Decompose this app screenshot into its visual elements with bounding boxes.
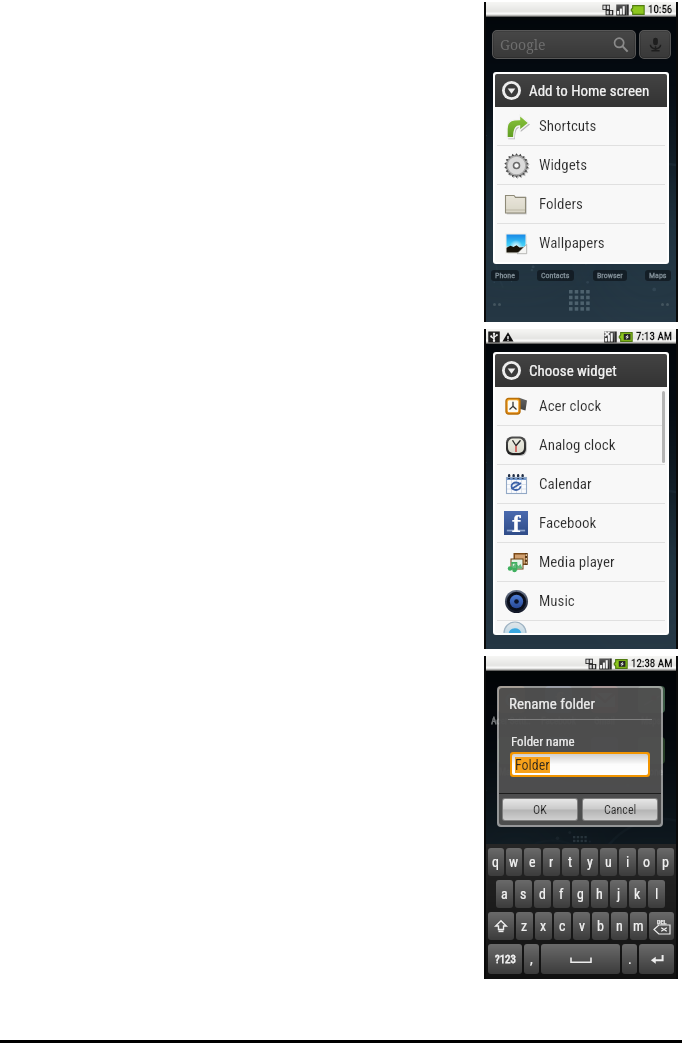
staticText: . (628, 951, 632, 967)
button[interactable]: j (610, 880, 627, 908)
staticText: Media player (539, 553, 615, 571)
button[interactable]: h (591, 880, 608, 908)
staticText: f (555, 687, 563, 712)
button[interactable]: k (629, 880, 646, 908)
staticText: c (559, 918, 566, 934)
button[interactable]: p (657, 848, 674, 876)
button[interactable]: Voice search (641, 32, 669, 57)
staticText: f (512, 510, 521, 534)
button[interactable]: c (554, 912, 571, 940)
button[interactable]: Add to Home screen (495, 74, 667, 107)
button[interactable]: y (581, 848, 598, 876)
other: Enter (649, 951, 665, 967)
button[interactable]: DEL (649, 912, 674, 940)
button[interactable]: x (535, 912, 552, 940)
staticText: Cancel (604, 803, 637, 817)
button[interactable]: a (496, 880, 513, 908)
button[interactable]: Music (495, 582, 667, 620)
button[interactable]: Shortcuts (495, 107, 667, 145)
button[interactable]: . (622, 944, 637, 974)
staticText: Analog clock (539, 436, 616, 454)
staticText: x (540, 918, 547, 934)
button[interactable]: n (611, 912, 628, 940)
button[interactable]: v (573, 912, 590, 940)
staticText: n (616, 918, 623, 934)
staticText: Gmail (594, 716, 615, 727)
button[interactable]: Media player (495, 543, 667, 581)
button[interactable]: Google (494, 32, 634, 57)
button[interactable]: g (572, 880, 589, 908)
staticText: ?123 (495, 953, 516, 966)
staticText: Acer Setti.. (491, 716, 531, 727)
button[interactable]: l (648, 880, 665, 908)
button[interactable]: Cancel (583, 799, 657, 820)
button[interactable]: m (630, 912, 647, 940)
button[interactable]: OK (503, 799, 577, 820)
staticText: Folders (539, 195, 583, 213)
staticText: Shortcuts (539, 117, 597, 135)
button[interactable]: q (488, 848, 504, 876)
staticText: 12:38 AM (631, 657, 673, 670)
staticText: Choose widget (529, 362, 617, 380)
button[interactable]: f (495, 504, 667, 542)
staticText: y (587, 854, 593, 870)
button[interactable]: Contacts (541, 271, 570, 280)
staticText: Market (499, 767, 524, 778)
staticText: Acer clock (539, 397, 602, 415)
button[interactable]: Browser (597, 271, 623, 280)
staticText: DEL (657, 918, 667, 925)
button[interactable]: Acer clock (495, 387, 667, 425)
staticText: h (596, 886, 603, 902)
button[interactable]: Folder (512, 754, 648, 775)
staticText: o (643, 854, 651, 870)
staticText: Phone (495, 271, 515, 280)
staticText: Rename folder (509, 695, 595, 713)
button[interactable]: e (524, 848, 541, 876)
staticText: Widgets (539, 156, 588, 174)
staticText: q (492, 854, 500, 870)
staticText: j (617, 886, 621, 902)
staticText: Folder (515, 757, 550, 773)
other: Warning (502, 331, 514, 343)
staticText: Add to Home screen (529, 82, 650, 100)
staticText: d (539, 886, 546, 902)
button[interactable]: , (524, 944, 539, 974)
button[interactable]: Widgets (495, 146, 667, 184)
button[interactable]: Analog clock (495, 426, 667, 464)
staticText: z (521, 918, 528, 934)
staticText: u (605, 854, 612, 870)
staticText: p (662, 854, 669, 870)
button[interactable]: Phone (495, 271, 515, 280)
button[interactable]: f (553, 880, 570, 908)
staticText: b (597, 918, 604, 934)
staticText: OK (533, 803, 547, 817)
staticText: Calendar (539, 475, 592, 493)
button[interactable]: i (619, 848, 636, 876)
button[interactable]: u (600, 848, 617, 876)
other: Space (571, 955, 591, 963)
staticText: Music (539, 592, 575, 610)
staticText: i (626, 854, 630, 870)
staticText: Music (593, 767, 615, 778)
staticText: v (579, 918, 585, 934)
button[interactable]: b (592, 912, 609, 940)
button[interactable]: Shift (488, 912, 514, 940)
button[interactable]: d (534, 880, 551, 908)
button[interactable]: s (515, 880, 532, 908)
button[interactable]: z (516, 912, 533, 940)
button[interactable]: r (543, 848, 560, 876)
button[interactable]: Enter (639, 944, 674, 974)
button[interactable]: w (506, 848, 522, 876)
button[interactable]: o (638, 848, 655, 876)
staticText: Contacts (541, 271, 570, 280)
staticText: g (577, 886, 584, 902)
button[interactable]: Choose widget (495, 354, 667, 387)
staticText: f (559, 886, 564, 902)
button[interactable]: Folders (495, 185, 667, 223)
button[interactable]: Space (541, 944, 620, 974)
button[interactable]: Calendar (495, 465, 667, 503)
button[interactable]: Wallpapers (495, 224, 667, 262)
button[interactable]: ?123 (488, 944, 522, 974)
button[interactable]: t (562, 848, 579, 876)
button[interactable]: Maps (649, 271, 667, 280)
